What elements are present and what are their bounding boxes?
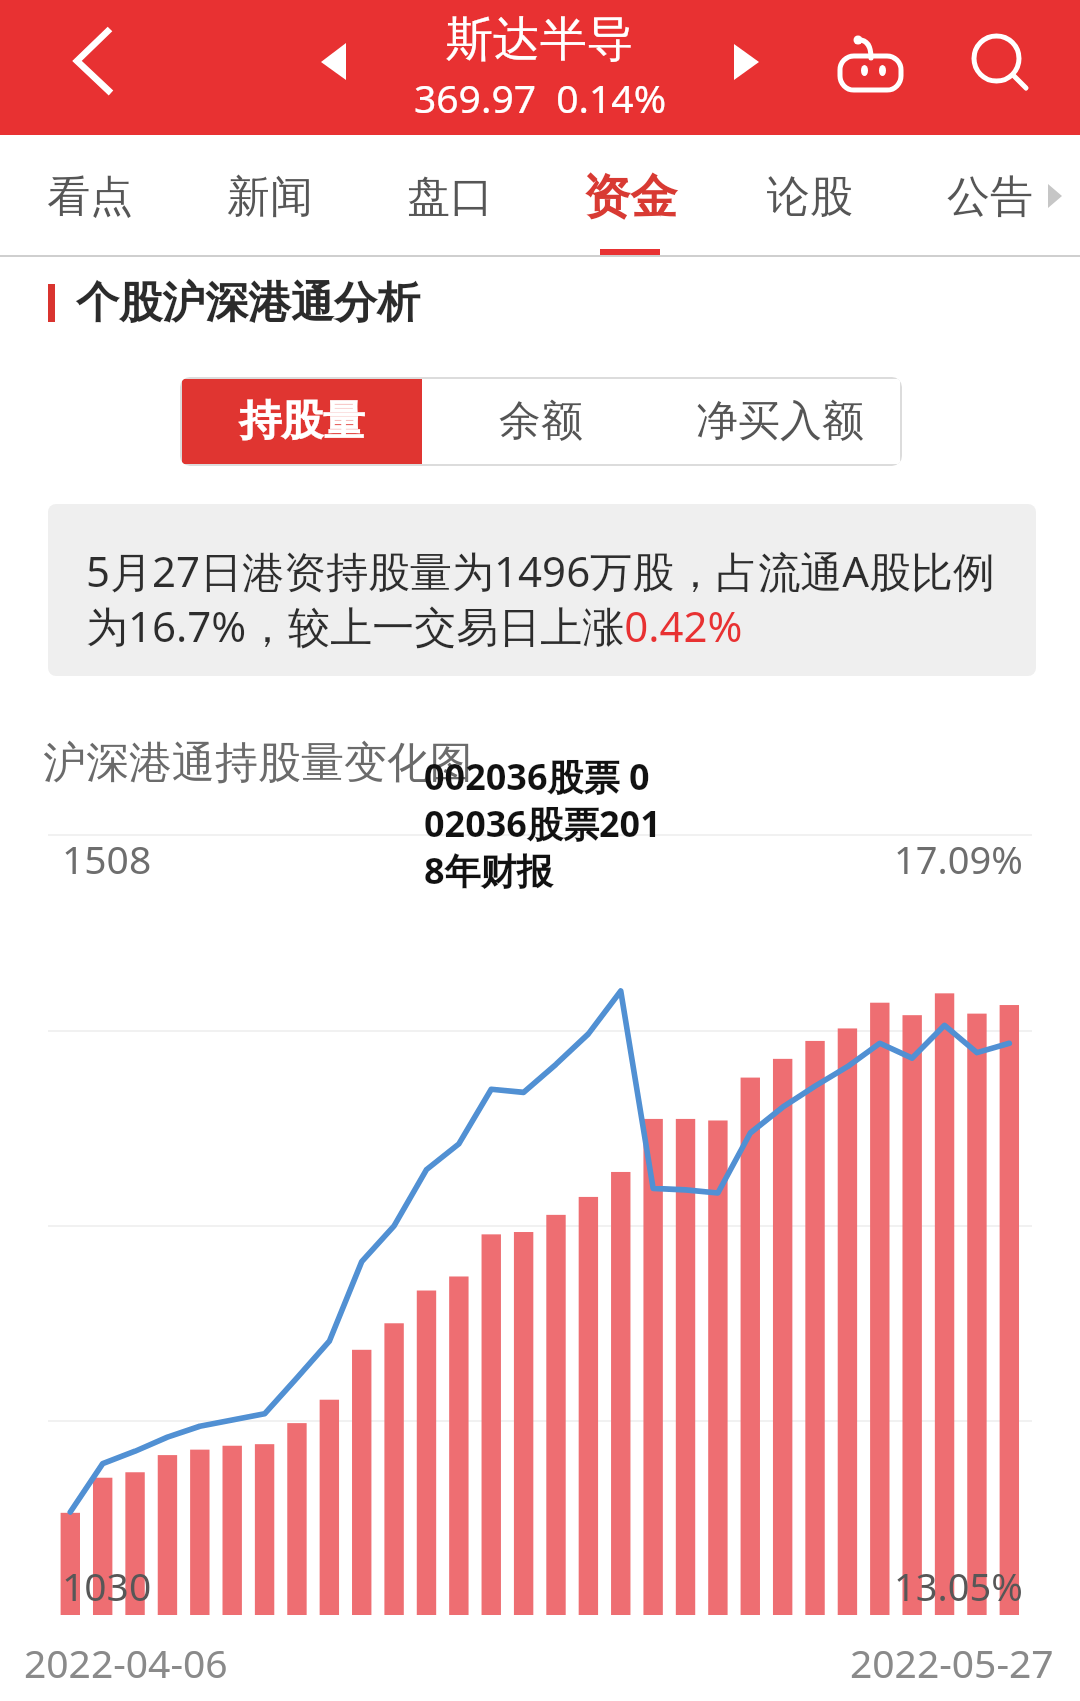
staticText: 1030 xyxy=(62,1559,152,1612)
staticText: 持股量 xyxy=(239,395,365,448)
staticText: 公告 xyxy=(947,170,1033,224)
button[interactable]: Search xyxy=(955,13,1045,103)
button[interactable]: 论股 xyxy=(720,135,900,257)
staticText: 盘口 xyxy=(407,170,493,224)
button[interactable]: 资金 xyxy=(540,135,720,257)
staticText: 个股沪深港通分析 xyxy=(76,276,420,330)
staticText: 17.09% xyxy=(894,833,1023,885)
staticText: 2022-05-27 xyxy=(850,1636,1054,1689)
staticText: 资金 xyxy=(583,168,677,227)
button[interactable]: Previous stock xyxy=(305,28,373,96)
staticText: 论股 xyxy=(767,170,853,224)
button[interactable]: More tabs xyxy=(1046,179,1076,209)
staticText: 5月27日港资持股量为1496万股，占流通A股比例为16.7%，较上一交易日上涨… xyxy=(86,542,1002,654)
staticText: 斯达半导 xyxy=(446,10,634,69)
staticText: 余额 xyxy=(499,395,583,448)
staticText: 看点 xyxy=(47,170,133,224)
staticText: 369.97 0.14% xyxy=(414,71,667,124)
button[interactable]: 盘口 xyxy=(360,135,540,257)
button[interactable]: 新闻 xyxy=(180,135,360,257)
button[interactable]: Back xyxy=(41,10,117,86)
button[interactable]: 余额 xyxy=(422,379,660,464)
button[interactable]: 净买入额 xyxy=(660,379,900,464)
staticText: 2022-04-06 xyxy=(24,1636,228,1689)
staticText: 新闻 xyxy=(227,170,313,224)
staticText: 净买入额 xyxy=(696,395,864,448)
staticText: 1508 xyxy=(62,832,152,885)
button[interactable]: 持股量 xyxy=(182,379,422,464)
staticText: 沪深港通持股量变化图 xyxy=(43,736,473,790)
button[interactable]: Next stock xyxy=(718,28,786,96)
button[interactable]: AI assistant xyxy=(825,20,915,110)
button[interactable]: 看点 xyxy=(0,135,180,257)
button[interactable]: 公告 xyxy=(900,135,1080,257)
staticText: 002036股票 0 02036股票201 8年财报 xyxy=(424,752,661,895)
staticText: 13.05% xyxy=(894,1560,1023,1612)
